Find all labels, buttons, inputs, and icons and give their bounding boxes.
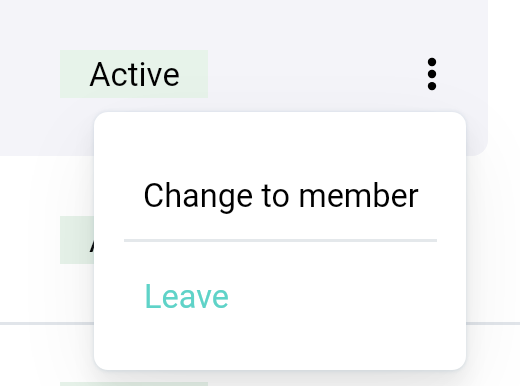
button[interactable]: More options: [416, 40, 448, 104]
staticText: Leave: [144, 278, 229, 316]
button[interactable]: [0, 0, 488, 156]
staticText: Active: [89, 55, 180, 94]
button[interactable]: Active: [60, 50, 208, 98]
staticText: Change to member: [143, 177, 419, 215]
button[interactable]: Active: [60, 216, 208, 264]
button[interactable]: Change to member: [94, 112, 466, 240]
staticText: Active: [89, 221, 180, 260]
button[interactable]: [0, 325, 520, 386]
button[interactable]: [0, 156, 520, 323]
button[interactable]: Leave: [94, 242, 466, 370]
button[interactable]: Active: [60, 382, 208, 386]
